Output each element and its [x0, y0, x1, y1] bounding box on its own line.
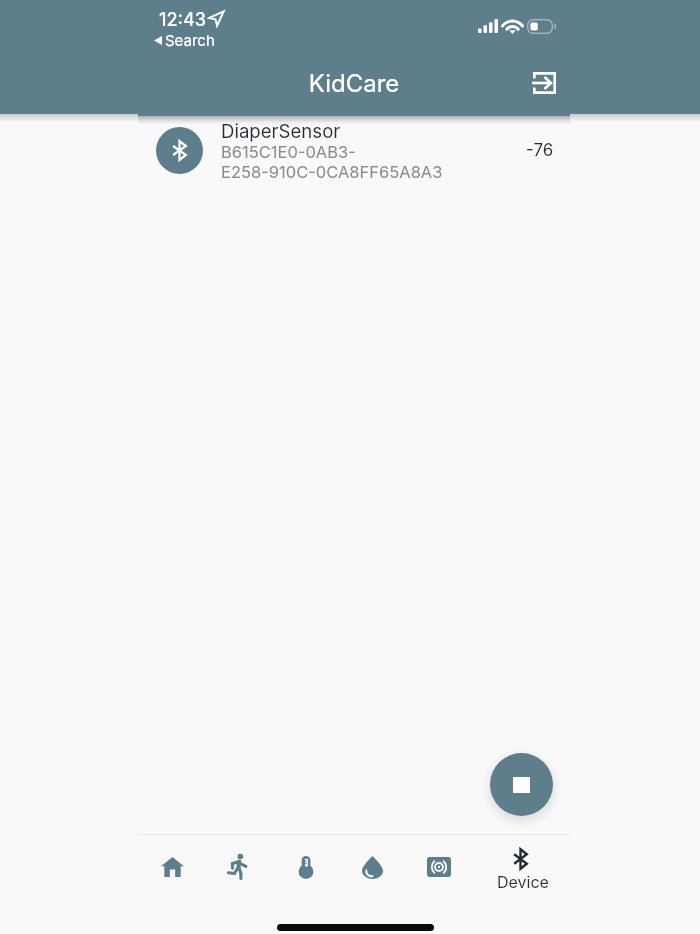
button[interactable]: Home — [148, 844, 196, 890]
staticText: Device — [497, 872, 549, 891]
button[interactable]: Device — [487, 840, 555, 896]
staticText: E258-910C-0CA8FF65A8A3 — [221, 162, 443, 182]
button[interactable]: Temperature — [282, 844, 330, 890]
button[interactable]: Log out — [525, 64, 563, 102]
staticText: -76 — [526, 140, 554, 161]
staticText: DiaperSensor — [221, 120, 341, 143]
staticText: Search — [165, 31, 215, 49]
button[interactable]: DiaperSensor — [138, 116, 570, 188]
staticText: KidCare — [138, 69, 570, 98]
button[interactable]: Activity — [213, 844, 261, 890]
staticText: 12:43 — [159, 9, 207, 31]
button[interactable]: Sound — [415, 844, 463, 890]
button[interactable]: Humidity — [348, 844, 396, 890]
staticText: B615C1E0-0AB3- — [221, 142, 356, 162]
button[interactable]: Stop scanning — [490, 753, 553, 816]
